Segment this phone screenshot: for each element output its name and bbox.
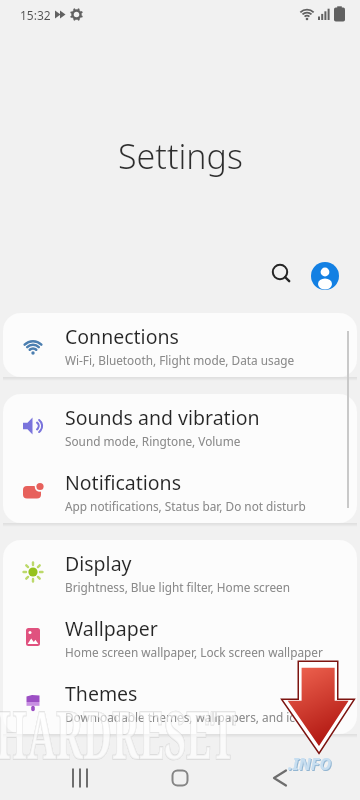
button[interactable]: Display (3, 540, 357, 604)
staticText: Sound mode, Ringtone, Volume (65, 433, 241, 449)
staticText: Display (65, 550, 132, 577)
staticText: Downloadable themes, wallpapers, and ico… (65, 709, 316, 725)
staticText: Home screen wallpaper, Lock screen wallp… (65, 644, 323, 660)
button[interactable]: Sounds and vibration (3, 394, 357, 458)
button[interactable] (266, 258, 298, 290)
staticText: Settings (118, 133, 243, 179)
staticText: Brightness, Blue light filter, Home scre… (65, 579, 290, 595)
button[interactable] (311, 262, 339, 290)
staticText: Themes (65, 680, 138, 707)
staticText: HARDRESET (0, 690, 207, 779)
button[interactable] (260, 758, 300, 798)
staticText: Wallpaper (65, 615, 158, 642)
staticText: App notifications, Status bar, Do not di… (65, 498, 306, 514)
staticText: .INFO (289, 754, 333, 776)
button[interactable]: Connections (3, 313, 357, 377)
button[interactable] (160, 758, 200, 798)
staticText: 15:32 (20, 7, 51, 23)
staticText: HARDRESET (0, 690, 207, 779)
staticText: .INFO (288, 753, 332, 775)
button[interactable] (60, 758, 100, 798)
button[interactable]: Notifications (3, 458, 357, 523)
staticText: Wi-Fi, Bluetooth, Flight mode, Data usag… (65, 352, 295, 368)
staticText: Notifications (65, 469, 181, 496)
button[interactable]: Themes (3, 669, 357, 734)
staticText: Sounds and vibration (65, 404, 260, 431)
staticText: Connections (65, 323, 179, 350)
button[interactable]: Wallpaper (3, 604, 357, 669)
